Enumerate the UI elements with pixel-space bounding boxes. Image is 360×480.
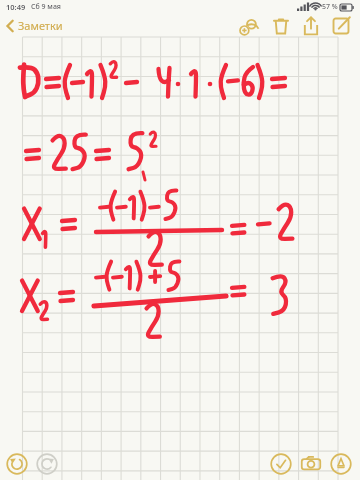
- button[interactable]: Разметка: [326, 449, 356, 479]
- button[interactable]: Новая заметка: [326, 14, 356, 37]
- button[interactable]: Добавить участников: [236, 14, 266, 37]
- staticText: Заметки: [18, 18, 63, 33]
- staticText: Сб 9 мая: [31, 2, 61, 12]
- button[interactable]: Заметки: [4, 18, 63, 33]
- button[interactable]: Удалить: [266, 14, 296, 37]
- button[interactable]: Камера: [296, 449, 326, 479]
- button[interactable]: Готово: [266, 449, 296, 479]
- button[interactable]: Отменить: [2, 449, 32, 479]
- staticText: 10:49: [6, 2, 26, 12]
- button[interactable]: Повторить: [32, 449, 62, 479]
- button[interactable]: Поделиться: [296, 14, 326, 37]
- staticText: 57 %: [322, 2, 338, 12]
